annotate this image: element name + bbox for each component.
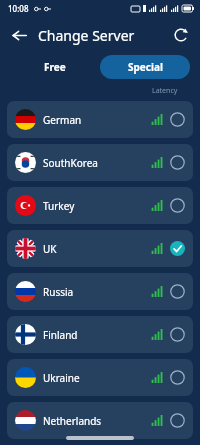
staticText: SouthKorea xyxy=(43,156,98,170)
button[interactable]: Netherlands xyxy=(7,402,193,439)
staticText: Change Server xyxy=(38,26,135,45)
staticText: Free xyxy=(44,60,66,74)
button[interactable]: Russia xyxy=(7,273,193,310)
button[interactable]: UK xyxy=(7,230,193,267)
staticText: German xyxy=(43,113,82,127)
button[interactable]: German xyxy=(7,101,193,138)
button[interactable]: Ukraine xyxy=(7,359,193,396)
staticText: Ukraine xyxy=(43,371,80,385)
staticText: Special xyxy=(128,60,163,74)
staticText: 10:08 xyxy=(8,3,29,14)
staticText: UK xyxy=(43,242,57,256)
staticText: Turkey xyxy=(43,199,75,213)
staticText: Finland xyxy=(43,328,78,342)
button[interactable]: SouthKorea xyxy=(7,144,193,181)
button[interactable]: Turkey xyxy=(7,187,193,224)
staticText: Netherlands xyxy=(43,414,102,428)
button[interactable]: Refresh xyxy=(169,23,193,47)
staticText: Russia xyxy=(43,285,74,299)
staticText: Latency xyxy=(152,86,178,96)
button[interactable]: Finland xyxy=(7,316,193,353)
button[interactable]: Free xyxy=(10,55,100,79)
button[interactable]: Special xyxy=(100,55,190,79)
button[interactable]: Back xyxy=(6,22,32,48)
